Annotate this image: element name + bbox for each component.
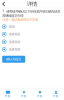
- button[interactable]: 导航: [16, 88, 32, 100]
- button[interactable]: 导航: [0, 88, 16, 100]
- button[interactable]: 选择项目: [2, 46, 62, 53]
- staticText: 导航: [53, 95, 59, 98]
- staticText: 选择项目: [9, 47, 21, 51]
- staticText: 详情: [27, 1, 37, 7]
- staticText: 导航: [37, 95, 43, 98]
- staticText: 导航: [21, 95, 27, 98]
- button[interactable]: 选项: [2, 23, 62, 30]
- staticText: 选择项目: [9, 32, 21, 36]
- staticText: 导航: [5, 95, 11, 98]
- staticText: 确认并提交: [6, 57, 21, 61]
- button[interactable]: Back: [0, 0, 5, 8]
- staticText: 1. 请阅读并确认以下的信息内容正确无误后再继续提交办理: [2, 9, 60, 18]
- staticText: 注意：请认真核对以下内容: [2, 18, 38, 22]
- staticText: 选择项目: [9, 40, 21, 44]
- button[interactable]: 选择项目: [2, 30, 62, 38]
- button[interactable]: 导航: [48, 88, 64, 100]
- button[interactable]: 确认并提交: [2, 56, 25, 63]
- button[interactable]: 导航: [32, 88, 48, 100]
- button[interactable]: 选择项目: [2, 38, 62, 46]
- staticText: 选项: [9, 25, 15, 29]
